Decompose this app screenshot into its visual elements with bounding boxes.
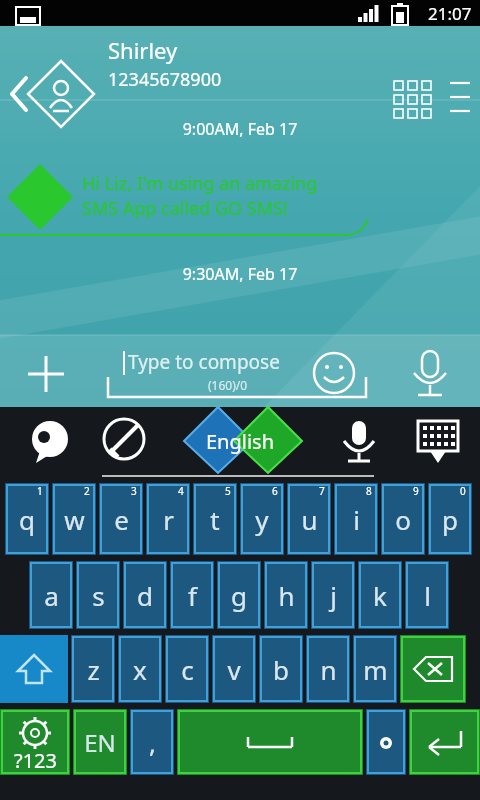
staticText: y (255, 502, 269, 537)
staticText: 21:07 (428, 2, 472, 25)
button[interactable]: w (52, 483, 96, 555)
button[interactable]: g (217, 561, 261, 629)
button[interactable]: h (264, 561, 308, 629)
staticText: q (19, 502, 35, 537)
staticText: 9:30AM, Feb 17 (0, 263, 480, 285)
button[interactable]: r (146, 483, 190, 555)
staticText: 1 (37, 484, 43, 498)
button[interactable]: o (381, 483, 425, 555)
staticText: 8 (366, 484, 372, 498)
button[interactable]: Space (177, 709, 363, 775)
staticText: s (92, 578, 105, 613)
staticText: f (188, 578, 197, 613)
button[interactable]: x (118, 635, 162, 703)
staticText: 9:00AM, Feb 17 (0, 118, 480, 140)
button[interactable]: f (170, 561, 214, 629)
staticText: 4 (178, 484, 184, 498)
button[interactable]: t (193, 483, 237, 555)
staticText: ?123 (14, 747, 57, 774)
staticText: 9 (413, 484, 419, 498)
button[interactable]: m (353, 635, 397, 703)
staticText: 3 (131, 484, 137, 498)
staticText: Hi Liz, I'm using an amazing (82, 171, 318, 196)
button[interactable]: c (165, 635, 209, 703)
staticText: t (210, 502, 220, 537)
button[interactable]: i (334, 483, 378, 555)
button[interactable]: e (99, 483, 143, 555)
button[interactable]: Period (366, 709, 406, 775)
staticText: 5 (225, 484, 231, 498)
button[interactable]: p (428, 483, 472, 555)
staticText: EN (84, 726, 116, 759)
staticText: g (231, 578, 247, 613)
staticText: , (149, 725, 156, 760)
staticText: v (227, 652, 241, 687)
staticText: English (206, 428, 275, 455)
staticText: Type to compose (128, 349, 280, 375)
staticText: SMS App called GO SMS! (82, 196, 288, 221)
staticText: 2 (84, 484, 90, 498)
button[interactable]: d (123, 561, 167, 629)
button[interactable]: Symbols (0, 709, 70, 775)
staticText: c (181, 652, 194, 687)
staticText: 7 (319, 484, 325, 498)
button[interactable]: z (71, 635, 115, 703)
staticText: 0 (460, 484, 466, 498)
staticText: j (330, 578, 337, 613)
button[interactable]: k (358, 561, 402, 629)
staticText: w (64, 502, 85, 537)
button[interactable]: v (212, 635, 256, 703)
button[interactable]: Enter (409, 709, 480, 775)
staticText: b (273, 652, 289, 687)
button[interactable]: l (405, 561, 449, 629)
staticText: p (442, 502, 458, 537)
staticText: Shirley (108, 35, 178, 65)
staticText: z (87, 652, 100, 687)
button[interactable]: y (240, 483, 284, 555)
staticText: r (163, 502, 174, 537)
staticText: e (114, 502, 129, 537)
staticText: 6 (272, 484, 278, 498)
button[interactable]: , (130, 709, 174, 775)
staticText: h (278, 578, 295, 613)
staticText: d (137, 578, 153, 613)
staticText: n (320, 652, 337, 687)
staticText: a (44, 578, 59, 613)
staticText: 12345678900 (108, 67, 222, 92)
button[interactable]: q (5, 483, 49, 555)
staticText: m (363, 652, 388, 687)
button[interactable]: Shift (0, 635, 68, 703)
staticText: (160)/0 (208, 377, 248, 393)
staticText: k (373, 578, 387, 613)
button[interactable]: n (306, 635, 350, 703)
staticText: i (353, 502, 360, 537)
button[interactable]: a (29, 561, 73, 629)
button[interactable]: u (287, 483, 331, 555)
button[interactable]: EN (73, 709, 127, 775)
staticText: x (133, 652, 147, 687)
staticText: l (424, 578, 431, 613)
button[interactable]: Delete (400, 635, 466, 703)
button[interactable]: s (76, 561, 120, 629)
staticText: o (395, 502, 411, 537)
button[interactable]: b (259, 635, 303, 703)
button[interactable]: j (311, 561, 355, 629)
staticText: u (301, 502, 318, 537)
